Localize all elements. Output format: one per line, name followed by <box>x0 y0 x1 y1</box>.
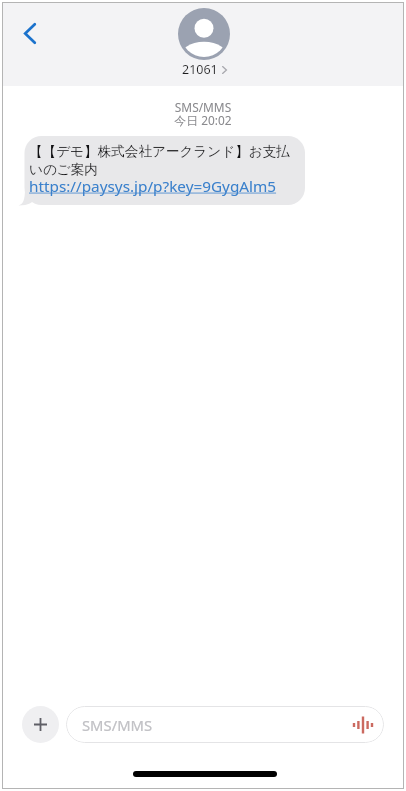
staticText: 【【デモ】株式会社アークランド】お支払いのご案内 https://paysys.… <box>29 143 299 196</box>
button[interactable]: Back <box>10 13 50 53</box>
button[interactable]: 【【デモ】株式会社アークランド】お支払いのご案内 https://paysys.… <box>19 136 305 205</box>
button[interactable]: SMS/MMS <box>66 706 384 743</box>
button[interactable]: Add attachment <box>22 706 59 743</box>
button[interactable]: 21061 <box>178 8 230 78</box>
staticText: SMS/MMS <box>82 715 153 735</box>
staticText: SMS/MMS 今日 20:02 <box>2 99 404 129</box>
button[interactable]: Voice message <box>352 714 374 736</box>
staticText: 21061 <box>182 61 218 78</box>
